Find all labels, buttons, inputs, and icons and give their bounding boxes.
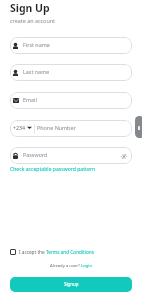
button[interactable]: Password — [10, 147, 132, 164]
button[interactable]: First name — [10, 37, 132, 54]
staticText: Sign Up — [10, 1, 50, 15]
button[interactable]: Show password — [120, 152, 128, 160]
staticText: Signup — [64, 281, 79, 287]
staticText: create an account — [10, 17, 55, 24]
button[interactable]: +234 — [10, 120, 132, 137]
button[interactable]: Scroll — [135, 116, 142, 138]
staticText: Terms and Conditions — [46, 249, 94, 255]
staticText: Email — [23, 96, 37, 103]
button[interactable]: Email — [10, 92, 132, 109]
button[interactable]: I accept the — [10, 249, 94, 255]
button[interactable]: Login — [81, 263, 92, 269]
staticText: Last name — [23, 68, 50, 75]
button[interactable]: Signup — [10, 277, 132, 292]
button[interactable]: Check acceptable password pattern — [10, 166, 96, 173]
staticText: I accept the — [19, 249, 46, 255]
staticText: First name — [23, 41, 50, 48]
staticText: Already a user? — [50, 263, 81, 269]
staticText: Password — [23, 151, 48, 158]
staticText: +234 — [13, 124, 25, 131]
staticText: Phone Number — [37, 124, 76, 131]
button[interactable]: Last name — [10, 64, 132, 81]
